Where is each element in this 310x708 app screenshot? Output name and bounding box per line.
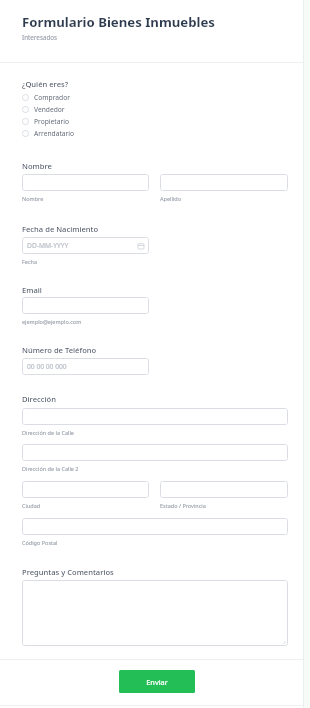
- staticText: Fecha: [22, 258, 38, 265]
- button[interactable]: [22, 174, 149, 191]
- staticText: Dirección de la Calle 2: [22, 465, 79, 472]
- button[interactable]: [22, 518, 288, 535]
- staticText: Interesados: [22, 33, 58, 42]
- staticText: Comprador: [34, 93, 70, 102]
- button[interactable]: DD-MM-YYYY: [22, 237, 149, 254]
- staticText: Email: [22, 285, 42, 295]
- other: Abrir calendario: [138, 243, 144, 249]
- button[interactable]: [22, 481, 149, 498]
- staticText: Ciudad: [22, 502, 41, 509]
- staticText: ejemplo@ejemplo.com: [22, 318, 82, 325]
- button[interactable]: [160, 174, 288, 191]
- button[interactable]: [22, 408, 288, 425]
- staticText: Formulario Bienes Inmuebles: [22, 13, 215, 31]
- button[interactable]: [22, 297, 149, 314]
- button[interactable]: Comprador: [22, 92, 132, 103]
- button[interactable]: [22, 580, 288, 646]
- button[interactable]: Vendedor: [22, 104, 132, 115]
- staticText: Nombre: [22, 161, 52, 171]
- staticText: Arrendatario: [34, 129, 75, 138]
- staticText: Dirección: [22, 394, 56, 404]
- button[interactable]: Enviar: [119, 670, 195, 693]
- staticText: 00 00 00 000: [27, 362, 67, 371]
- staticText: Propietario: [34, 117, 70, 126]
- staticText: Código Postal: [22, 539, 58, 546]
- staticText: Vendedor: [34, 105, 65, 114]
- button[interactable]: [22, 444, 288, 461]
- staticText: Número de Teléfono: [22, 345, 97, 355]
- staticText: Fecha de Nacimiento: [22, 224, 99, 234]
- button[interactable]: [160, 481, 288, 498]
- staticText: DD-MM-YYYY: [27, 241, 69, 250]
- staticText: ¿Quién eres?: [22, 79, 69, 89]
- staticText: Estado / Provincia: [160, 502, 206, 509]
- staticText: Apellido: [160, 195, 181, 202]
- staticText: Nombre: [22, 195, 44, 202]
- staticText: Preguntas y Comentarios: [22, 567, 114, 577]
- staticText: Enviar: [146, 677, 168, 687]
- button[interactable]: Arrendatario: [22, 128, 132, 139]
- button[interactable]: 00 00 00 000: [22, 358, 149, 375]
- button[interactable]: Propietario: [22, 116, 132, 127]
- staticText: Dirección de la Calle: [22, 429, 74, 436]
